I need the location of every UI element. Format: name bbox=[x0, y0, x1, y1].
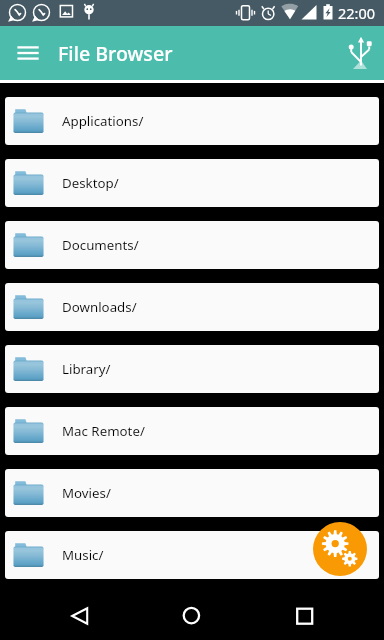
button[interactable]: Downloads/ bbox=[5, 283, 379, 331]
staticText: 22:00 bbox=[338, 3, 376, 23]
button[interactable]: USB bbox=[344, 36, 378, 70]
staticText: Movies/ bbox=[62, 484, 111, 502]
staticText: Documents/ bbox=[62, 236, 139, 254]
staticText: Downloads/ bbox=[62, 298, 137, 316]
button[interactable]: Home bbox=[180, 606, 206, 632]
staticText: File Browser bbox=[58, 40, 173, 67]
button[interactable]: Mac Remote/ bbox=[5, 407, 379, 455]
button[interactable]: Settings bbox=[313, 522, 367, 576]
button[interactable]: Movies/ bbox=[5, 469, 379, 517]
staticText: Mac Remote/ bbox=[62, 422, 145, 440]
button[interactable]: Desktop/ bbox=[5, 159, 379, 207]
button[interactable]: Applications/ bbox=[5, 97, 379, 145]
staticText: Music/ bbox=[62, 546, 104, 564]
button[interactable]: Menu bbox=[14, 40, 40, 66]
button[interactable]: Documents/ bbox=[5, 221, 379, 269]
button[interactable]: Back bbox=[71, 607, 103, 625]
staticText: Library/ bbox=[62, 360, 111, 378]
staticText: Applications/ bbox=[62, 112, 144, 130]
button[interactable]: Music/ bbox=[5, 531, 379, 579]
staticText: Desktop/ bbox=[62, 174, 119, 192]
button[interactable]: Library/ bbox=[5, 345, 379, 393]
button[interactable]: Recents bbox=[293, 606, 319, 632]
